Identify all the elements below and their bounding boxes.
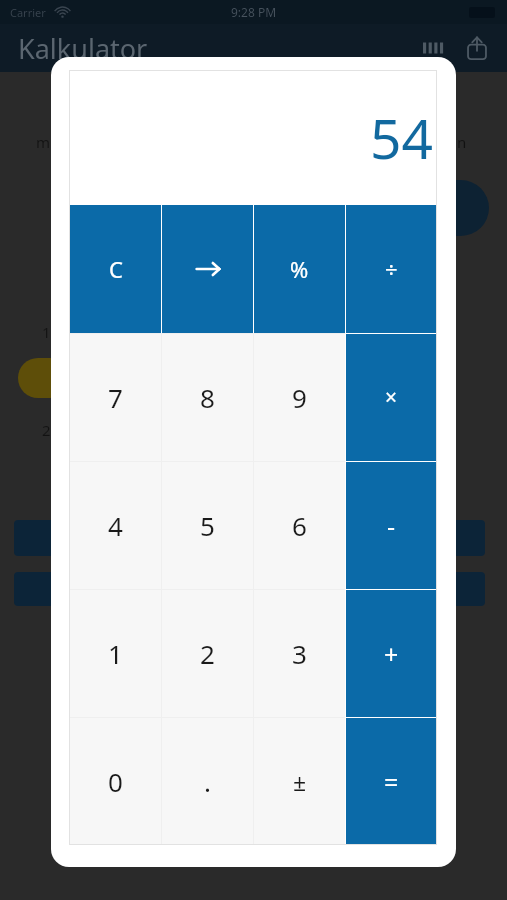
staticText: 8 <box>200 380 215 415</box>
button[interactable]: 6 <box>254 462 345 589</box>
staticText: 9:28 PM <box>231 4 277 20</box>
button[interactable]: 8 <box>162 334 253 461</box>
button[interactable]: ± <box>254 718 345 845</box>
staticText: × <box>385 383 398 412</box>
button[interactable]: × <box>346 334 437 461</box>
button[interactable]: . <box>162 718 253 845</box>
staticText: . <box>204 764 211 799</box>
staticText: 6 <box>292 508 307 543</box>
button[interactable]: 5 <box>162 462 253 589</box>
button[interactable]: Backspace <box>162 205 253 333</box>
staticText: C <box>109 254 123 284</box>
button[interactable]: C <box>70 205 161 333</box>
button[interactable]: 4 <box>70 462 161 589</box>
staticText: ÷ <box>385 254 398 284</box>
staticText: 1 <box>108 636 123 671</box>
staticText: Kalkulator <box>18 30 148 67</box>
button[interactable]: Share <box>463 34 491 62</box>
staticText: - <box>387 509 396 543</box>
button[interactable]: 0 <box>70 718 161 845</box>
staticText: 5 <box>200 508 215 543</box>
staticText: 54 <box>69 100 433 175</box>
staticText: % <box>290 254 309 284</box>
button[interactable]: Grid <box>423 37 445 59</box>
staticText: = <box>384 765 399 799</box>
button[interactable]: 7 <box>70 334 161 461</box>
staticText: 0 <box>108 764 123 799</box>
staticText: + <box>384 637 399 671</box>
button[interactable]: 1 <box>70 590 161 717</box>
staticText: 1 <box>42 322 51 342</box>
button[interactable]: - <box>346 462 437 589</box>
staticText: 7 <box>108 380 123 415</box>
button[interactable]: 2 <box>162 590 253 717</box>
button[interactable]: + <box>346 590 437 717</box>
button[interactable]: 9 <box>254 334 345 461</box>
staticText: n <box>457 132 467 152</box>
button[interactable]: 3 <box>254 590 345 717</box>
staticText: ± <box>293 766 307 797</box>
staticText: m <box>36 132 51 152</box>
staticText: 4 <box>108 508 123 543</box>
staticText: Carrier <box>10 5 46 20</box>
staticText: 9 <box>292 380 307 415</box>
button[interactable]: = <box>346 718 437 845</box>
staticText: 2 <box>200 636 215 671</box>
staticText: 3 <box>292 636 307 671</box>
button[interactable]: ÷ <box>346 205 437 333</box>
staticText: 2 <box>42 420 51 440</box>
button[interactable]: % <box>254 205 345 333</box>
